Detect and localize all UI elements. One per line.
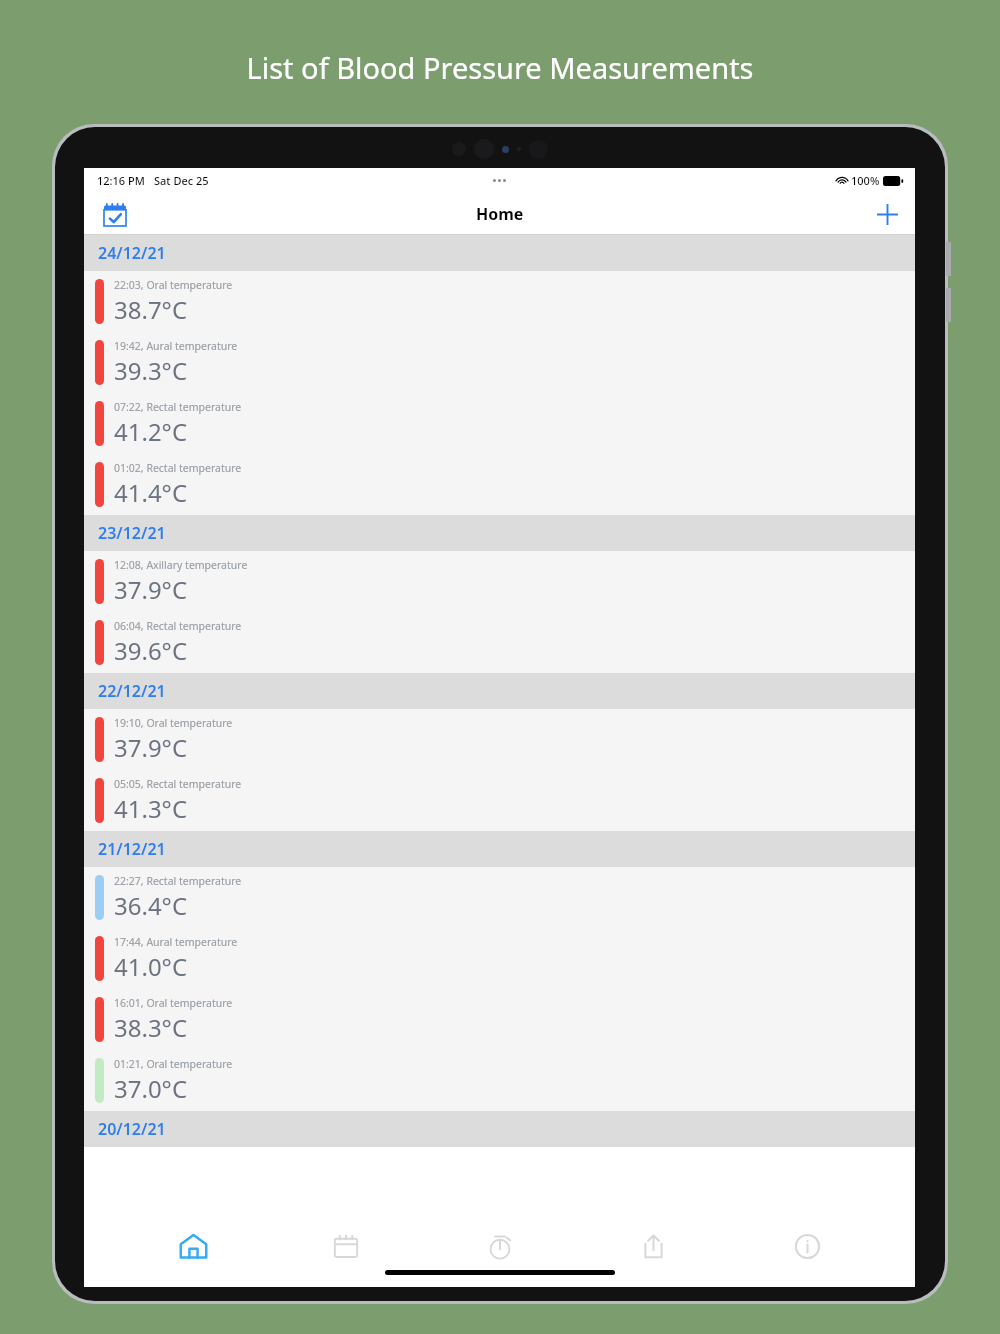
button[interactable]: 22:27, Rectal temperature bbox=[84, 867, 915, 928]
staticText: 22:27, Rectal temperature bbox=[114, 874, 242, 888]
staticText: 41.2°C bbox=[114, 415, 188, 448]
staticText: 22/12/21 bbox=[98, 680, 166, 702]
button[interactable]: 06:04, Rectal temperature bbox=[84, 612, 915, 673]
staticText: 36.4°C bbox=[114, 889, 188, 922]
staticText: Home bbox=[476, 203, 524, 225]
staticText: 41.4°C bbox=[114, 476, 188, 509]
staticText: 12:08, Axillary temperature bbox=[114, 558, 248, 572]
button[interactable]: 01:02, Rectal temperature bbox=[84, 454, 915, 515]
staticText: List of Blood Pressure Measurements bbox=[0, 48, 1000, 87]
staticText: 06:04, Rectal temperature bbox=[114, 619, 242, 633]
button[interactable]: 01:21, Oral temperature bbox=[84, 1050, 915, 1111]
button[interactable]: Calendar checklist bbox=[98, 197, 132, 231]
staticText: 20/12/21 bbox=[98, 1118, 166, 1140]
staticText: 100% bbox=[851, 173, 880, 188]
button[interactable]: 22/12/21 bbox=[84, 673, 915, 709]
staticText: 38.3°C bbox=[114, 1011, 188, 1044]
button[interactable]: Share bbox=[608, 1224, 698, 1268]
staticText: 19:10, Oral temperature bbox=[114, 716, 233, 730]
button[interactable]: 07:22, Rectal temperature bbox=[84, 393, 915, 454]
staticText: 12:16 PM bbox=[97, 173, 145, 188]
button[interactable]: Home bbox=[148, 1224, 238, 1268]
button[interactable]: Info bbox=[762, 1224, 852, 1268]
button[interactable]: 20/12/21 bbox=[84, 1111, 915, 1147]
button[interactable]: 19:10, Oral temperature bbox=[84, 709, 915, 770]
staticText: Sat Dec 25 bbox=[154, 173, 209, 188]
staticText: 37.9°C bbox=[114, 573, 188, 606]
staticText: 22:03, Oral temperature bbox=[114, 278, 233, 292]
staticText: 23/12/21 bbox=[98, 522, 166, 544]
staticText: 01:21, Oral temperature bbox=[114, 1057, 233, 1071]
button[interactable]: 21/12/21 bbox=[84, 831, 915, 867]
button[interactable]: 12:08, Axillary temperature bbox=[84, 551, 915, 612]
staticText: 41.3°C bbox=[114, 792, 188, 825]
button[interactable]: 05:05, Rectal temperature bbox=[84, 770, 915, 831]
staticText: 39.3°C bbox=[114, 354, 188, 387]
staticText: 21/12/21 bbox=[98, 838, 166, 860]
button[interactable]: 19:42, Aural temperature bbox=[84, 332, 915, 393]
staticText: 24/12/21 bbox=[98, 242, 166, 264]
staticText: 37.0°C bbox=[114, 1072, 188, 1105]
staticText: 39.6°C bbox=[114, 634, 188, 667]
staticText: 01:02, Rectal temperature bbox=[114, 461, 242, 475]
staticText: 41.0°C bbox=[114, 950, 188, 983]
staticText: 07:22, Rectal temperature bbox=[114, 400, 242, 414]
button[interactable]: 22:03, Oral temperature bbox=[84, 271, 915, 332]
staticText: 37.9°C bbox=[114, 731, 188, 764]
button[interactable]: 17:44, Aural temperature bbox=[84, 928, 915, 989]
button[interactable]: 16:01, Oral temperature bbox=[84, 989, 915, 1050]
staticText: 16:01, Oral temperature bbox=[114, 996, 233, 1010]
staticText: 38.7°C bbox=[114, 293, 188, 326]
button[interactable]: Timer bbox=[455, 1224, 545, 1268]
button[interactable]: Calendar bbox=[301, 1224, 391, 1268]
button[interactable]: 24/12/21 bbox=[84, 235, 915, 271]
staticText: 19:42, Aural temperature bbox=[114, 339, 238, 353]
staticText: 17:44, Aural temperature bbox=[114, 935, 238, 949]
staticText: 05:05, Rectal temperature bbox=[114, 777, 242, 791]
button[interactable]: 23/12/21 bbox=[84, 515, 915, 551]
button[interactable]: Add measurement bbox=[869, 196, 905, 232]
